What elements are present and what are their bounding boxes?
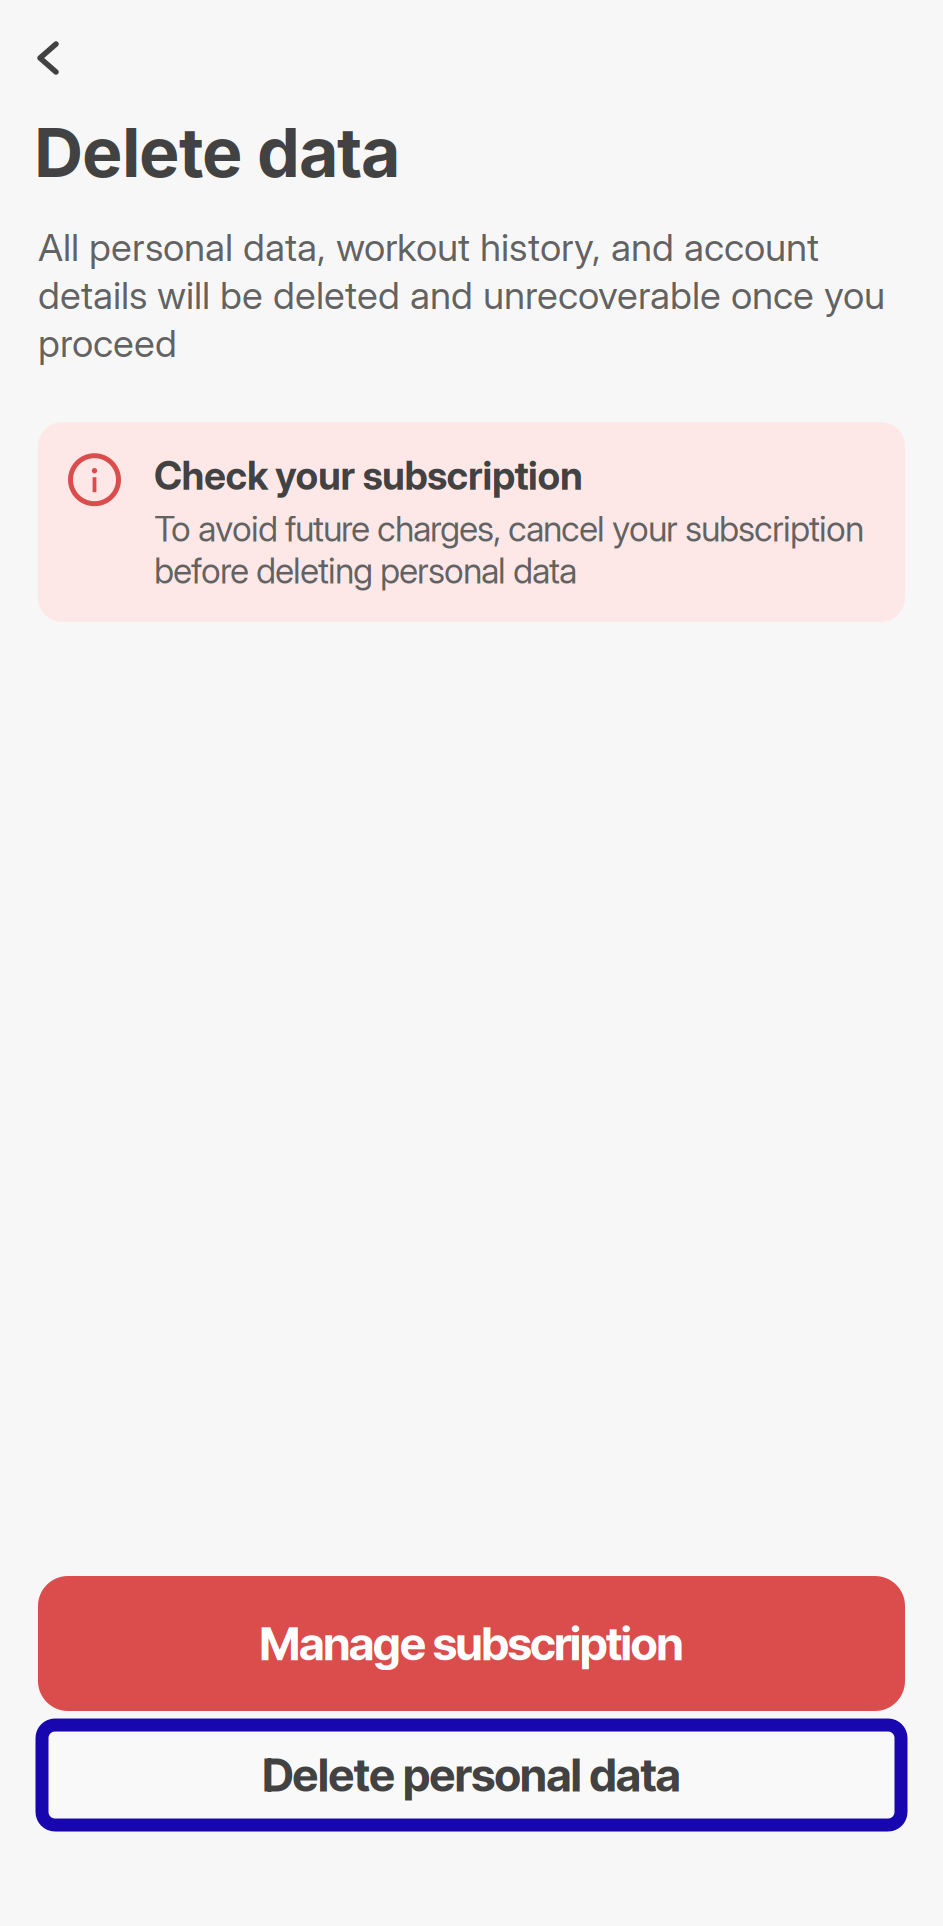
button[interactable]: Delete personal data (42, 1725, 901, 1825)
button[interactable]: Manage subscription (38, 1576, 905, 1711)
staticText: Delete data (34, 111, 400, 193)
staticText: Delete personal data (262, 1748, 681, 1802)
staticText: Check your subscription (154, 452, 583, 499)
staticText: To avoid future charges, cancel your sub… (154, 508, 864, 592)
staticText: Manage subscription (259, 1616, 684, 1671)
staticText: All personal data, workout history, and … (38, 224, 885, 366)
button[interactable]: Back (0, 0, 83, 87)
